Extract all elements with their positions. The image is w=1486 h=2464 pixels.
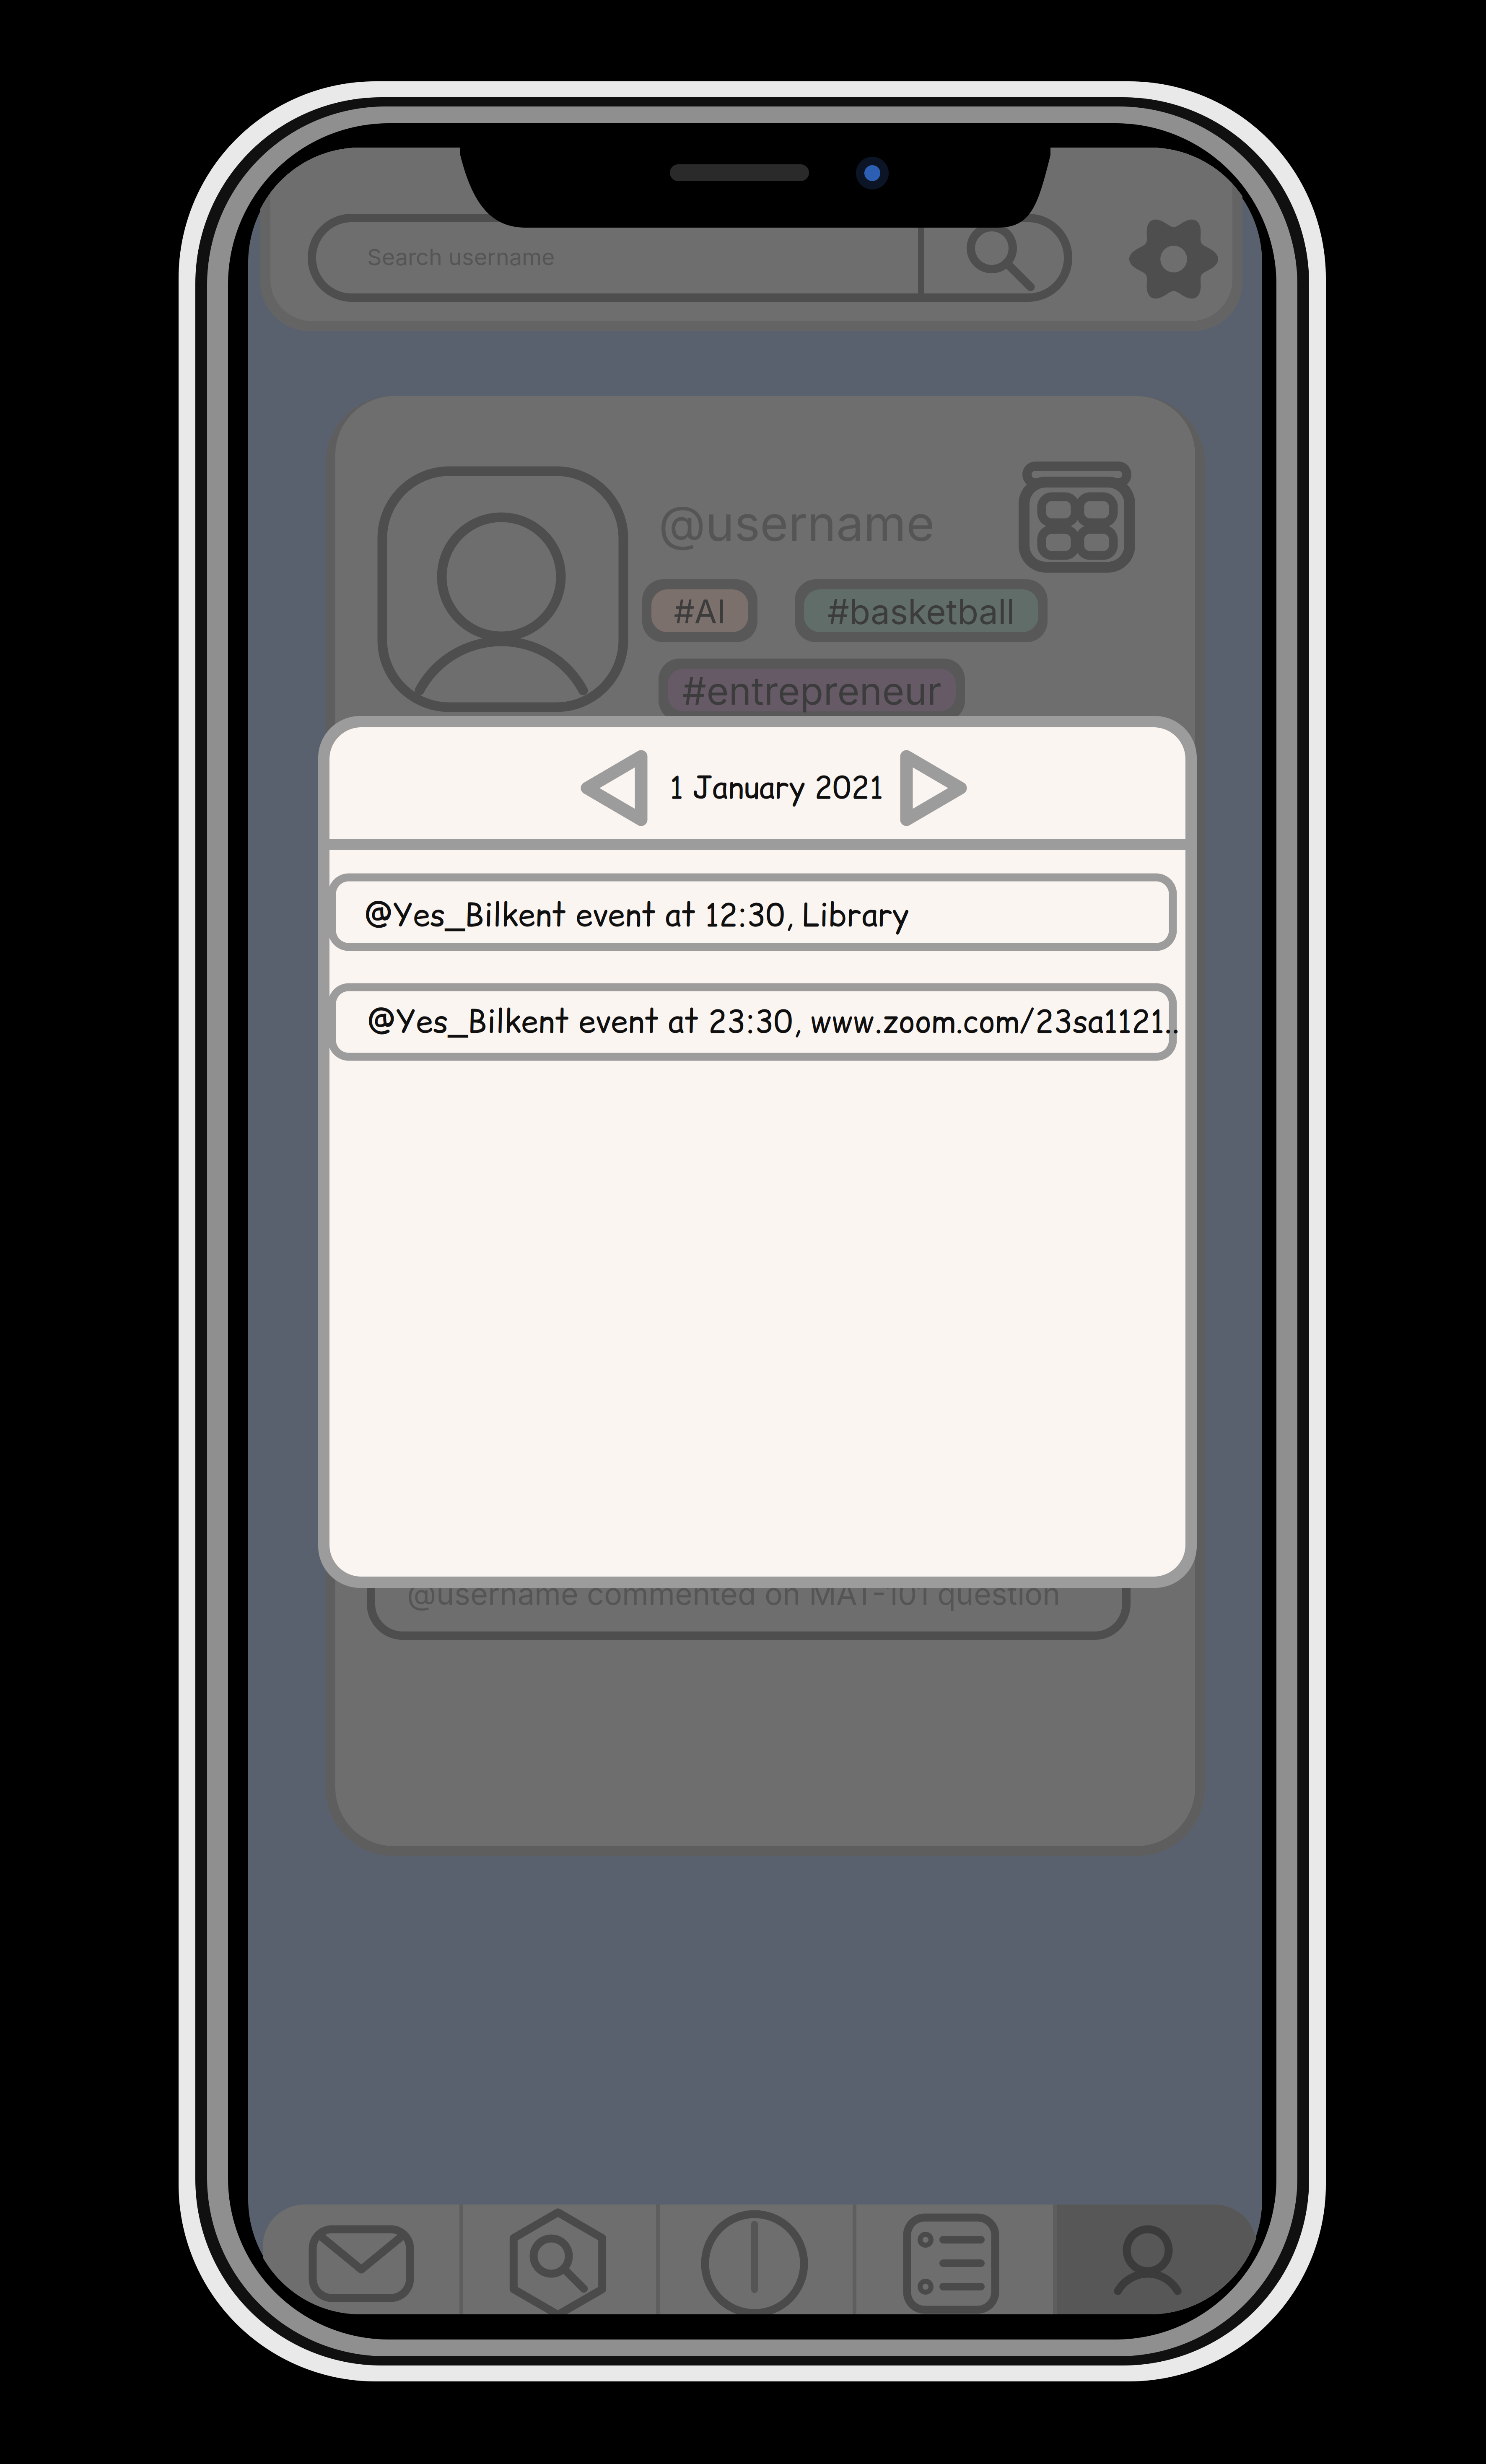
button[interactable]: Explore [0, 0, 1486, 2464]
button[interactable]: @Yes_Bilkent event at 23:30, www.zoom.co… [0, 0, 1486, 2464]
staticText: #basketball [827, 591, 1015, 632]
button[interactable]: @Yes_Bilkent event at 12:30, Library [0, 0, 1486, 2464]
button[interactable]: Profile [0, 0, 1486, 2464]
button[interactable]: #AI [0, 0, 1486, 2464]
staticText: @Yes_Bilkent event at 23:30, www.zoom.co… [367, 1000, 1179, 1043]
button[interactable]: Collections [0, 0, 1486, 2464]
button[interactable]: Home [0, 0, 1486, 2464]
staticText: 1 January 2021 [670, 766, 883, 808]
button[interactable]: Feed [0, 0, 1486, 2464]
staticText: @username commented on MAT-101 question [407, 1575, 1061, 1612]
button[interactable]: Next day [0, 0, 1486, 2464]
staticText: @Yes_Bilkent event at 12:30, Library [364, 893, 909, 936]
staticText: #AI [674, 592, 726, 631]
button[interactable]: #entrepreneur [0, 0, 1486, 2464]
staticText: @username [659, 494, 935, 553]
button[interactable]: Messages [0, 0, 1486, 2464]
button[interactable]: Previous day [0, 0, 1486, 2464]
button[interactable]: Settings [0, 0, 1486, 2464]
staticText: #entrepreneur [682, 668, 941, 714]
staticText: Search username [367, 243, 555, 271]
button[interactable]: #basketball [0, 0, 1486, 2464]
button[interactable]: Search username [0, 0, 1486, 2464]
